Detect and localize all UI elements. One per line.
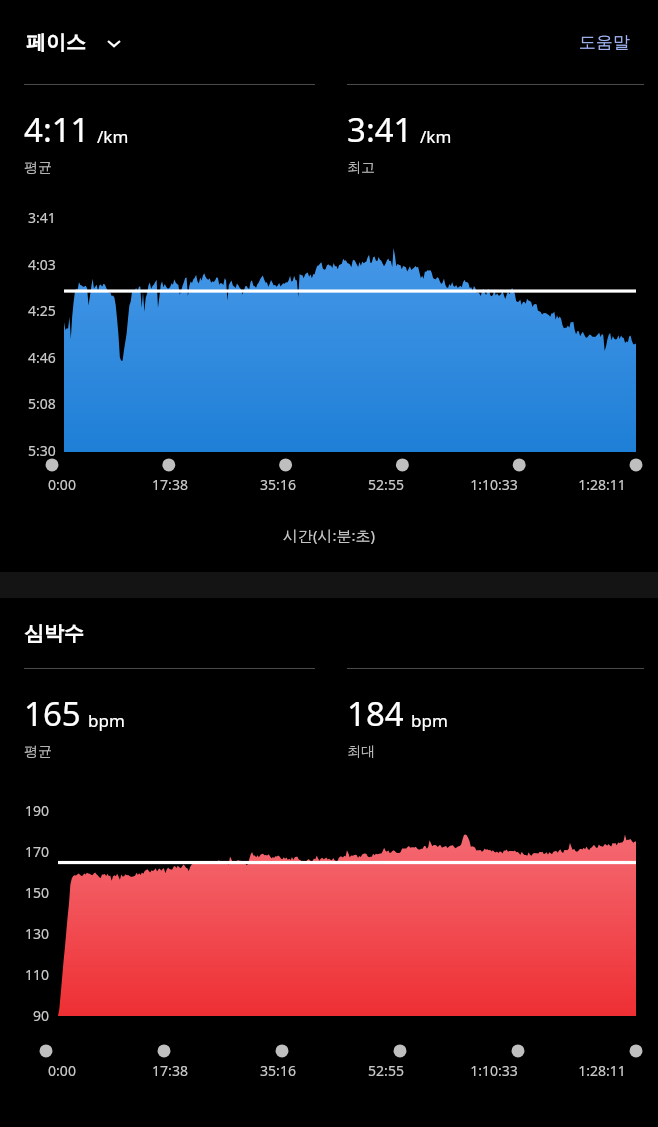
staticText: 5:30 bbox=[28, 441, 56, 460]
staticText: /km bbox=[97, 125, 129, 148]
staticText: 35:16 bbox=[260, 1061, 296, 1080]
staticText: 110 bbox=[25, 965, 50, 984]
staticText: 평균 bbox=[24, 743, 52, 761]
staticText: 190 bbox=[25, 801, 50, 820]
staticText: 1:10:33 bbox=[470, 1061, 518, 1080]
staticText: 최고 bbox=[347, 159, 375, 177]
staticText: 4:11 bbox=[24, 107, 90, 152]
staticText: 1:28:11 bbox=[578, 475, 626, 494]
staticText: 52:55 bbox=[368, 475, 404, 494]
staticText: 150 bbox=[25, 883, 50, 902]
staticText: /km bbox=[420, 125, 452, 148]
staticText: 165 bbox=[24, 691, 81, 736]
staticText: 90 bbox=[33, 1006, 50, 1025]
staticText: 3:41 bbox=[347, 107, 413, 152]
staticText: 최대 bbox=[347, 743, 375, 761]
staticText: 0:00 bbox=[48, 1061, 76, 1080]
button[interactable]: 도움말 bbox=[573, 26, 636, 59]
staticText: 52:55 bbox=[368, 1061, 404, 1080]
staticText: 5:08 bbox=[28, 394, 56, 413]
button[interactable]: 페이스 bbox=[24, 24, 126, 61]
staticText: 184 bbox=[347, 691, 404, 736]
staticText: 35:16 bbox=[260, 475, 296, 494]
staticText: 심박수 bbox=[24, 621, 84, 646]
staticText: 130 bbox=[25, 924, 50, 943]
staticText: 1:10:33 bbox=[470, 475, 518, 494]
staticText: 페이스 bbox=[26, 30, 86, 55]
staticText: 3:41 bbox=[28, 208, 56, 227]
staticText: 17:38 bbox=[152, 1061, 188, 1080]
staticText: 시간(시:분:초) bbox=[283, 525, 376, 545]
staticText: 4:03 bbox=[28, 255, 56, 274]
staticText: bpm bbox=[411, 709, 448, 732]
staticText: bpm bbox=[88, 709, 125, 732]
staticText: 도움말 bbox=[579, 32, 630, 53]
staticText: 평균 bbox=[24, 159, 52, 177]
staticText: 1:28:11 bbox=[578, 1061, 626, 1080]
staticText: 170 bbox=[25, 842, 50, 861]
staticText: 0:00 bbox=[48, 475, 76, 494]
staticText: 4:46 bbox=[28, 348, 56, 367]
staticText: 4:25 bbox=[28, 301, 56, 320]
staticText: 17:38 bbox=[152, 475, 188, 494]
